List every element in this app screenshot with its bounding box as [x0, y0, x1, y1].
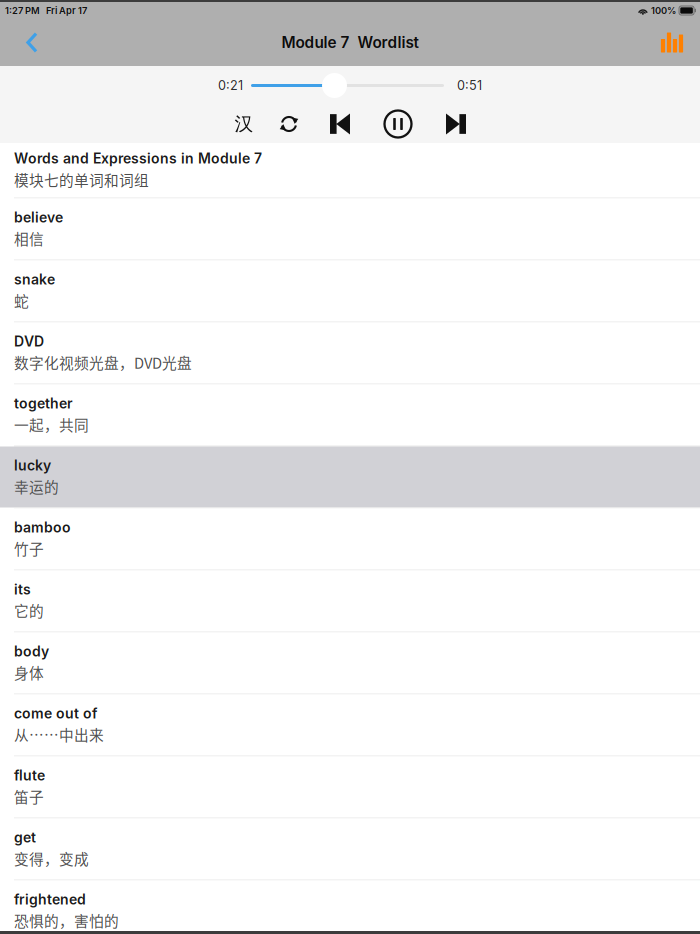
button[interactable]: Back [9, 19, 55, 65]
staticText: DVD [14, 333, 44, 350]
button[interactable]: come out of [0, 694, 700, 756]
staticText: frightened [14, 891, 86, 908]
button[interactable]: get [0, 818, 700, 880]
staticText: 0:21 [218, 78, 243, 93]
staticText: 变得，变成 [14, 848, 89, 869]
button[interactable]: believe [0, 198, 700, 260]
button[interactable]: DVD [0, 322, 700, 384]
staticText: believe [14, 209, 63, 226]
button[interactable]: Next [439, 109, 473, 139]
staticText: its [14, 581, 31, 598]
button[interactable]: body [0, 632, 700, 694]
staticText: Module 7 Wordlist [281, 33, 418, 52]
button[interactable]: Repeat [272, 109, 306, 139]
staticText: 蛇 [14, 290, 29, 311]
staticText: 汉 [234, 112, 253, 136]
button[interactable]: Words and Expressions in Module 7 [0, 143, 700, 198]
button[interactable]: Statistics [649, 19, 695, 65]
button[interactable]: snake [0, 260, 700, 322]
staticText: 相信 [14, 228, 44, 249]
staticText: 幸运的 [14, 476, 59, 497]
staticText: snake [14, 271, 55, 288]
staticText: 恐惧的，害怕的 [14, 910, 119, 931]
staticText: flute [14, 767, 45, 784]
button[interactable]: its [0, 570, 700, 632]
staticText: 身体 [14, 662, 44, 683]
button[interactable]: bamboo [0, 508, 700, 570]
staticText: 它的 [14, 600, 44, 621]
staticText: 竹子 [14, 538, 44, 559]
button[interactable]: frightened [0, 880, 700, 934]
button[interactable]: Toggle Chinese [227, 109, 261, 139]
staticText: 模块七的单词和词组 [14, 169, 149, 190]
staticText: 笛子 [14, 786, 44, 807]
staticText: 100% [651, 5, 676, 16]
staticText: Fri Apr 17 [46, 5, 87, 16]
staticText: 一起，共同 [14, 414, 89, 435]
button[interactable]: together [0, 384, 700, 446]
staticText: 数字化视频光盘，DVD光盘 [14, 352, 192, 373]
staticText: 0:51 [457, 78, 482, 93]
staticText: bamboo [14, 519, 71, 536]
staticText: body [14, 643, 49, 660]
button[interactable]: Pause [381, 109, 415, 139]
button[interactable]: lucky [0, 446, 700, 508]
staticText: Words and Expressions in Module 7 [14, 150, 262, 167]
staticText: 从……中出来 [14, 724, 104, 745]
staticText: lucky [14, 457, 51, 474]
staticText: get [14, 829, 36, 846]
button[interactable]: flute [0, 756, 700, 818]
button[interactable]: Previous [323, 109, 357, 139]
staticText: come out of [14, 705, 97, 722]
staticText: 1:27 PM [5, 5, 40, 16]
staticText: together [14, 395, 73, 412]
